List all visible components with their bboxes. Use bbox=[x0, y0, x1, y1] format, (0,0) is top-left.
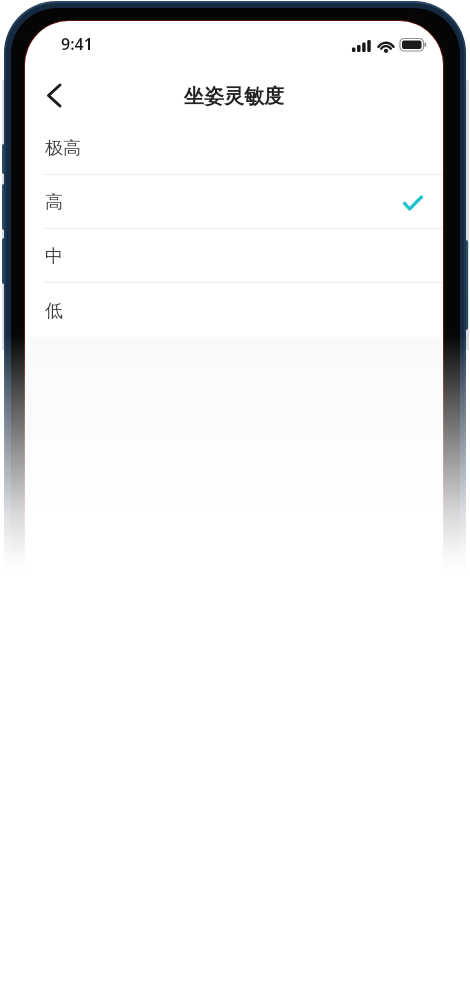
staticText: 中 bbox=[45, 245, 63, 268]
staticText: 高 bbox=[45, 191, 63, 214]
staticText: 坐姿灵敏度 bbox=[184, 84, 284, 109]
staticText: 9:41 bbox=[61, 33, 93, 55]
button[interactable]: 中 bbox=[25, 229, 443, 283]
button[interactable]: 极高 bbox=[25, 121, 443, 175]
staticText: 低 bbox=[45, 300, 63, 323]
button[interactable]: 低 bbox=[25, 283, 443, 337]
button[interactable]: 高 bbox=[25, 175, 443, 229]
staticText: 极高 bbox=[45, 137, 81, 160]
button[interactable] bbox=[30, 72, 76, 118]
